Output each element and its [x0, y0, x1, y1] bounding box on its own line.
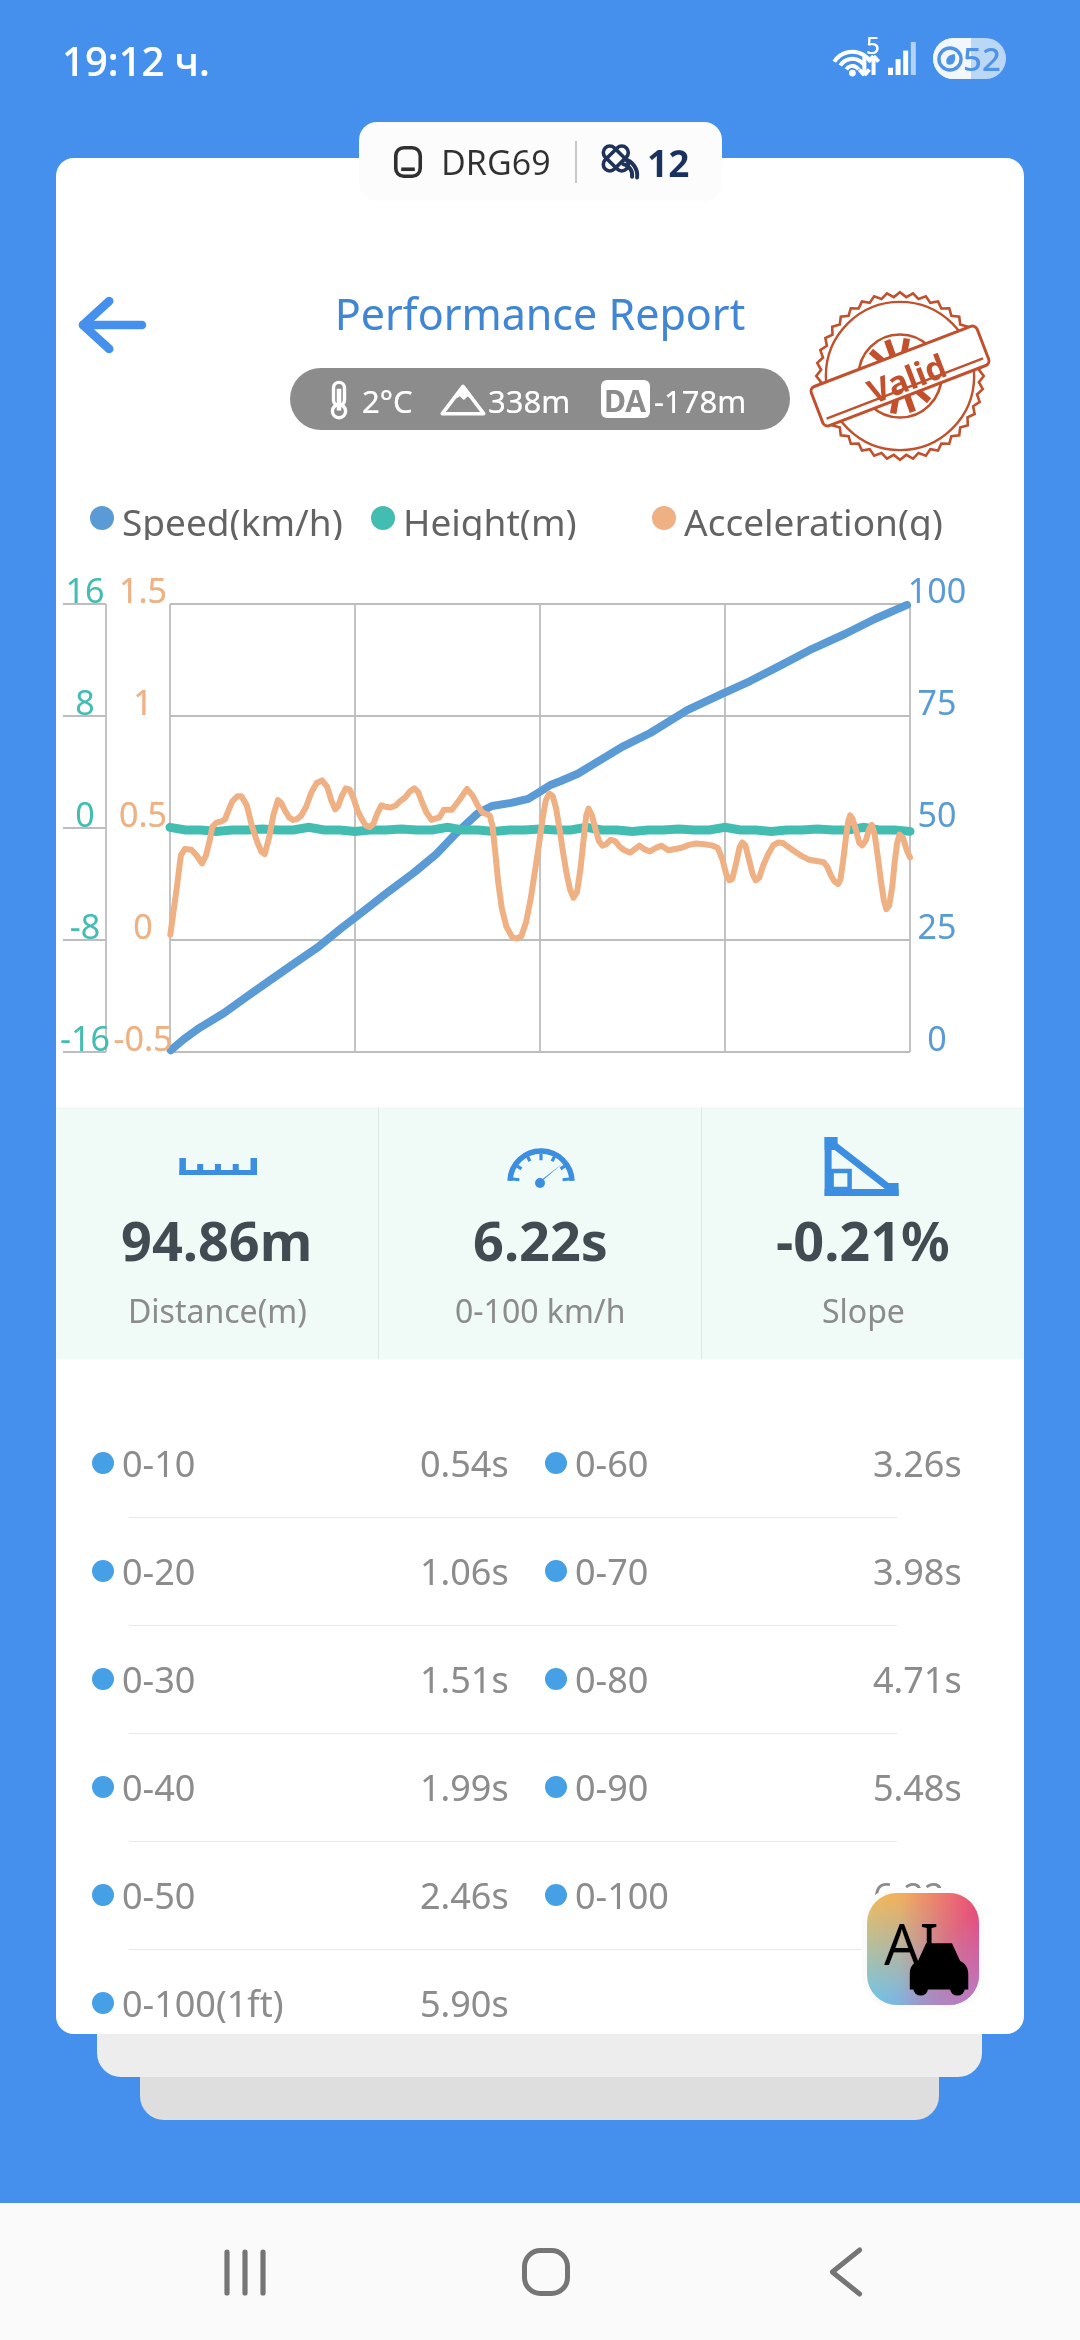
- staticText: 25: [857, 903, 1017, 949]
- staticText: 0-70: [575, 1547, 649, 1596]
- button[interactable]: DRG69: [359, 122, 722, 201]
- staticText: Performance Report: [56, 284, 1024, 343]
- staticText: 0-90: [575, 1763, 649, 1812]
- staticText: 0-80: [575, 1655, 649, 1704]
- staticText: 0-60: [575, 1439, 649, 1488]
- staticText: 5.48s: [873, 1763, 962, 1812]
- staticText: 12: [647, 137, 690, 187]
- button[interactable]: Back: [786, 2212, 906, 2332]
- staticText: DRG69: [441, 139, 551, 185]
- staticText: 1: [63, 679, 223, 725]
- staticText: 0-30: [122, 1655, 196, 1704]
- staticText: 1.99s: [420, 1763, 509, 1812]
- staticText: 6.22s: [873, 1871, 962, 1920]
- button[interactable]: AI assistant: [862, 1888, 984, 2010]
- staticText: -0.21%: [776, 1203, 950, 1277]
- staticText: Slope: [822, 1289, 905, 1333]
- button[interactable]: 0-70: [545, 1519, 962, 1623]
- staticText: 4.71s: [873, 1655, 962, 1704]
- staticText: 8: [56, 679, 165, 725]
- staticText: 1.06s: [420, 1547, 509, 1596]
- staticText: 2.46s: [420, 1871, 509, 1920]
- staticText: 1.51s: [420, 1655, 509, 1704]
- button[interactable]: 0-40: [92, 1735, 509, 1839]
- staticText: -178m: [654, 380, 747, 422]
- staticText: 3.26s: [873, 1439, 962, 1488]
- staticText: 5: [866, 28, 880, 61]
- staticText: 0-10: [122, 1439, 196, 1488]
- staticText: 0.5: [63, 791, 223, 837]
- staticText: -8: [56, 903, 165, 949]
- button[interactable]: 0-100: [545, 1843, 962, 1947]
- staticText: 0: [56, 791, 165, 837]
- staticText: 0-40: [122, 1763, 196, 1812]
- staticText: 1.5: [63, 567, 223, 613]
- staticText: Height(m): [403, 496, 577, 540]
- staticText: 52: [963, 38, 1001, 77]
- button[interactable]: 0-30: [92, 1627, 509, 1731]
- staticText: 338m: [488, 380, 571, 422]
- staticText: Acceleration(g): [684, 496, 943, 540]
- staticText: 0: [857, 1015, 1017, 1061]
- staticText: Valid: [861, 342, 953, 414]
- staticText: Distance(m): [128, 1289, 307, 1333]
- button[interactable]: 6.22s: [379, 1107, 701, 1359]
- staticText: 0-100 km/h: [455, 1289, 626, 1333]
- button[interactable]: Home: [486, 2212, 606, 2332]
- staticText: 75: [857, 679, 1017, 725]
- staticText: 16: [56, 567, 165, 613]
- staticText: 5.90s: [420, 1979, 509, 2028]
- button[interactable]: 0-50: [92, 1843, 509, 1947]
- staticText: 0: [63, 903, 223, 949]
- button[interactable]: -0.21%: [702, 1107, 1024, 1359]
- staticText: Speed(km/h): [122, 496, 343, 540]
- button[interactable]: Recent apps: [186, 2212, 306, 2332]
- button[interactable]: 2°C: [290, 368, 790, 430]
- staticText: 3.98s: [873, 1547, 962, 1596]
- staticText: 0-20: [122, 1547, 196, 1596]
- staticText: 100: [857, 567, 1017, 613]
- staticText: DA: [604, 380, 647, 418]
- button[interactable]: 94.86m: [56, 1107, 378, 1359]
- staticText: 0-50: [122, 1871, 196, 1920]
- staticText: 2°C: [362, 380, 413, 422]
- staticText: AI: [884, 1905, 939, 1981]
- staticText: 94.86m: [121, 1203, 313, 1277]
- staticText: 6.22s: [473, 1203, 608, 1277]
- button[interactable]: 0-60: [545, 1411, 962, 1515]
- staticText: 0.54s: [420, 1439, 509, 1488]
- button[interactable]: 0-20: [92, 1519, 509, 1623]
- staticText: 50: [857, 791, 1017, 837]
- staticText: -0.5: [63, 1015, 223, 1061]
- button[interactable]: 0-10: [92, 1411, 509, 1515]
- staticText: 0-100: [575, 1871, 669, 1920]
- staticText: 19:12 ч.: [62, 33, 210, 87]
- button[interactable]: 0-80: [545, 1627, 962, 1731]
- button[interactable]: 0-90: [545, 1735, 962, 1839]
- button[interactable]: 0-100(1ft): [92, 1951, 509, 2034]
- button[interactable]: Back: [56, 263, 174, 387]
- staticText: -16: [56, 1015, 165, 1061]
- staticText: 0-100(1ft): [122, 1979, 284, 2028]
